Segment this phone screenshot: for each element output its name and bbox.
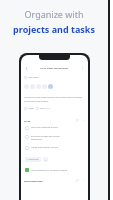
staticText: for the next three months [24, 100, 49, 103]
staticText: 63% [40, 107, 44, 110]
staticText: Create New Google+ account [31, 146, 59, 149]
button[interactable]: Sort [75, 178, 79, 182]
staticText: Social media management [40, 67, 69, 70]
button[interactable]: Add section [43, 157, 48, 162]
staticText: dimensions [31, 138, 42, 141]
button[interactable]: Re-discuss images with proper [25, 135, 88, 141]
staticText: + [45, 158, 47, 161]
button[interactable]: Sort [75, 118, 79, 122]
staticText: done [45, 107, 50, 110]
staticText: projects and tasks [0, 23, 108, 35]
staticText: Re-discuss images with proper [31, 135, 60, 138]
button[interactable]: + Add a task [25, 157, 41, 162]
button[interactable]: More options [81, 178, 85, 182]
staticText: + Add a task [27, 158, 39, 161]
button[interactable]: Back [24, 66, 29, 71]
staticText: Send a proposal for a monthly retainer [31, 169, 68, 172]
button[interactable]: Create New Google+ account [25, 146, 88, 150]
button[interactable]: More options [81, 118, 85, 122]
button[interactable]: More [80, 66, 85, 71]
button[interactable]: Share the Instagram account [25, 126, 88, 130]
staticText: 15 Jan [28, 107, 34, 110]
staticText: Organize with [0, 8, 108, 20]
staticText: New Client [28, 76, 39, 79]
staticText: To do [24, 119, 31, 122]
staticText: Recurring tasks [24, 179, 43, 182]
button[interactable]: Send a proposal for a monthly retainer [25, 168, 88, 172]
staticText: Manage all social media channels and cre… [24, 96, 83, 99]
staticText: Share the Instagram account [31, 126, 59, 129]
